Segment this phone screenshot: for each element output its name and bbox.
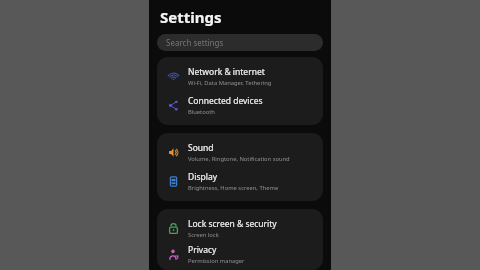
staticText: Privacy [188,244,217,256]
button[interactable]: Search settings [157,34,323,51]
staticText: Display [188,171,217,183]
staticText: Network & internet [188,66,265,78]
staticText: Wi-Fi, Data Manager, Tethering [188,79,272,87]
button[interactable]: Lock screen & security [157,214,323,243]
staticText: Settings [160,7,222,27]
staticText: Connected devices [188,95,263,107]
button[interactable]: Network & internet [157,62,323,91]
staticText: Lock screen & security [188,218,277,230]
staticText: Bluetooth [188,108,215,116]
staticText: Volume, Ringtone, Notification sound [188,155,290,163]
staticText: Sound [188,142,214,154]
button[interactable]: Sound [157,138,323,167]
staticText: Permission manager [188,257,245,265]
staticText: Brightness, Home screen, Theme [188,184,279,192]
staticText: Screen lock [188,231,219,239]
button[interactable]: Display [157,167,323,196]
button[interactable]: Connected devices [157,91,323,120]
staticText: Search settings [166,37,224,48]
button[interactable]: Privacy [157,243,323,265]
